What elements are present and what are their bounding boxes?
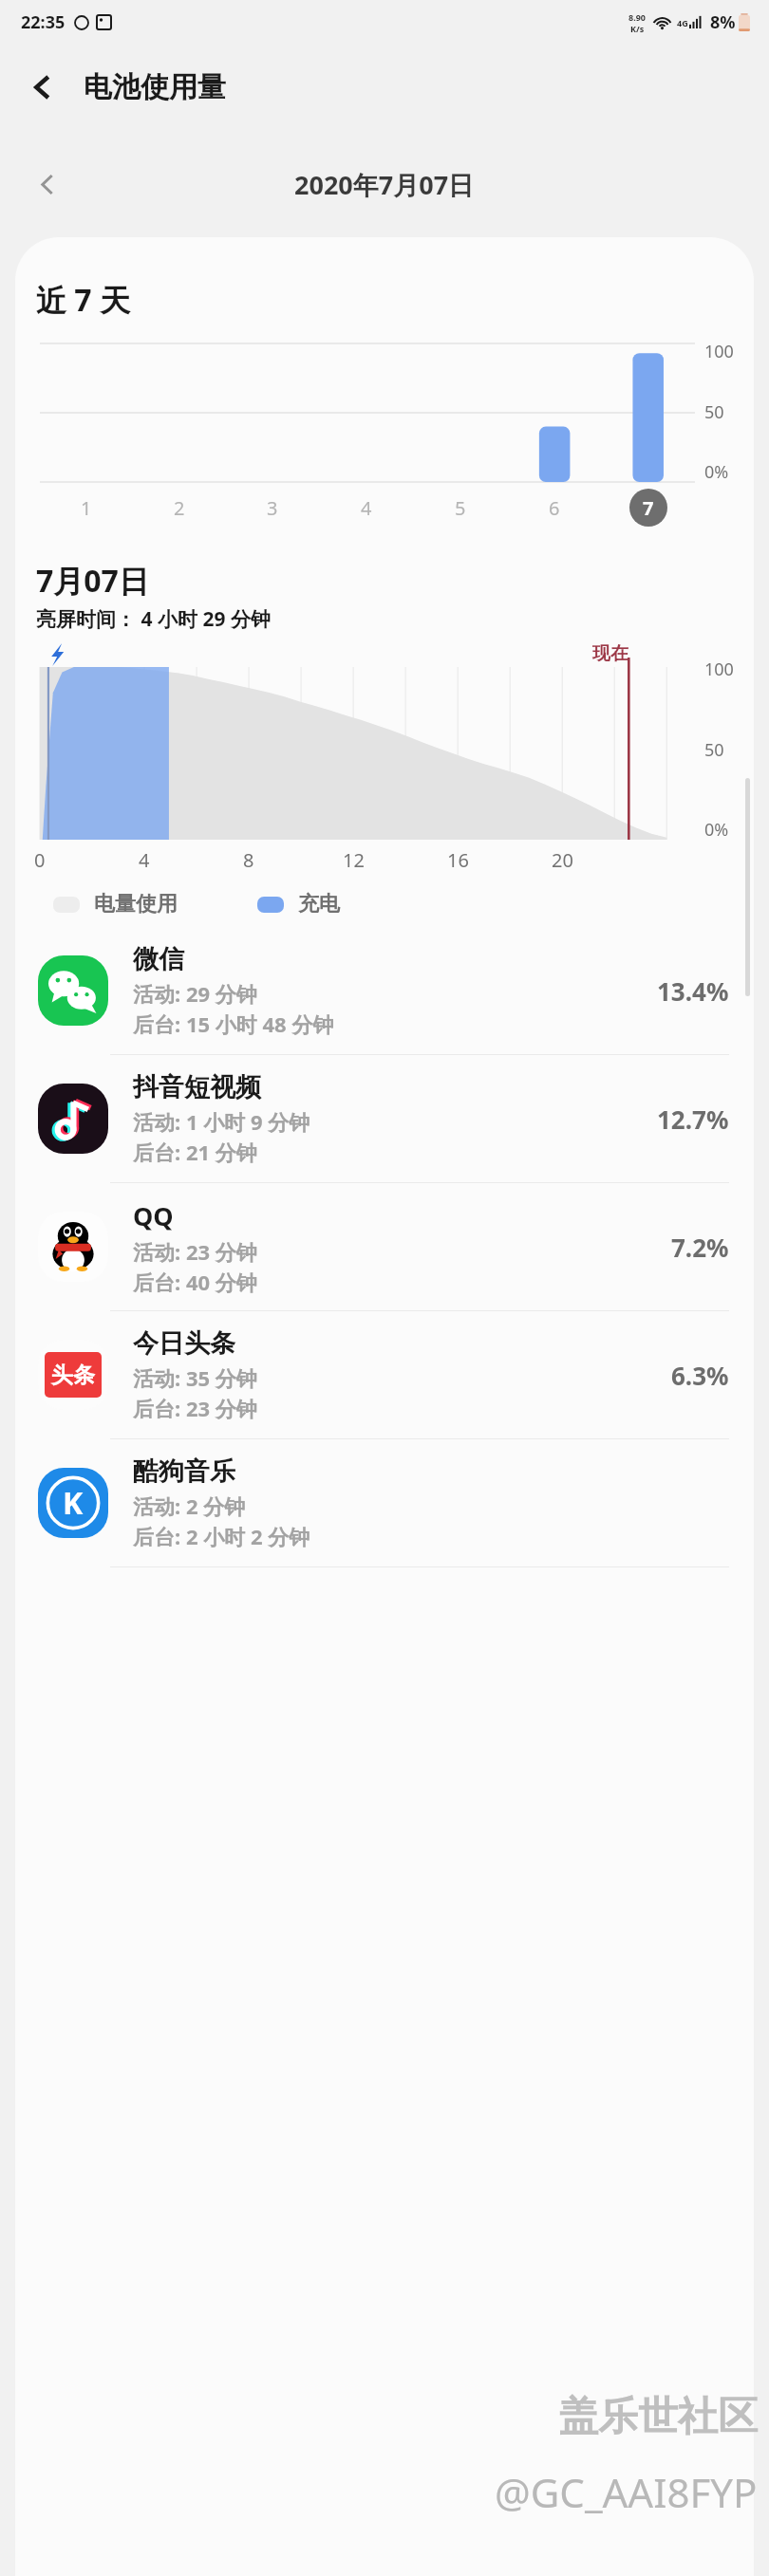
staticText: 8%	[710, 10, 736, 34]
staticText: 7	[643, 495, 654, 521]
staticText: 酷狗音乐	[133, 1455, 235, 1488]
staticText: 抖音短视频	[133, 1071, 261, 1103]
staticText: 0	[34, 847, 46, 873]
staticText: 活动: 35 分钟	[133, 1363, 257, 1392]
staticText: 13.4%	[657, 974, 729, 1008]
button[interactable]: QQ	[15, 1183, 754, 1310]
staticText: 后台: 21 分钟	[133, 1138, 257, 1166]
staticText: 7.2%	[671, 1231, 729, 1264]
staticText: 12	[343, 847, 365, 873]
button[interactable]: 4	[319, 488, 413, 528]
staticText: @GC_AAI8FYP	[495, 2465, 758, 2519]
staticText: 活动: 29 分钟	[133, 979, 257, 1008]
staticText: QQ	[133, 1198, 174, 1233]
button[interactable]: 1	[40, 488, 133, 528]
staticText: 后台: 15 小时 48 分钟	[133, 1010, 334, 1038]
button[interactable]: 3	[226, 488, 319, 528]
button[interactable]: 5	[413, 488, 507, 528]
staticText: 4	[361, 495, 372, 521]
staticText: 4	[139, 847, 150, 873]
staticText: 50	[704, 400, 724, 424]
staticText: 2020年7月07日	[294, 167, 475, 202]
button[interactable]: 2	[133, 488, 226, 528]
staticText: 充电	[298, 891, 340, 917]
staticText: 7月07日	[36, 560, 149, 602]
staticText: 电池使用量	[84, 69, 226, 105]
button[interactable]: Back	[15, 60, 70, 115]
staticText: 6	[549, 495, 560, 521]
staticText: 微信	[133, 943, 184, 975]
staticText: K/s	[630, 23, 645, 34]
staticText: 头条	[51, 1362, 95, 1389]
staticText: 100	[704, 340, 734, 363]
staticText: 今日头条	[133, 1327, 235, 1360]
staticText: 0%	[704, 460, 729, 484]
button[interactable]: 微信	[15, 927, 754, 1054]
staticText: 100	[704, 658, 734, 681]
staticText: 后台: 40 分钟	[133, 1268, 257, 1296]
staticText: K	[63, 1482, 84, 1524]
staticText: 亮屏时间： 4 小时 29 分钟	[36, 605, 271, 633]
button[interactable]: 头条	[15, 1311, 754, 1438]
staticText: 近 7 天	[36, 279, 130, 321]
staticText: 电量使用	[94, 891, 178, 917]
staticText: 1	[81, 495, 92, 521]
staticText: 5	[455, 495, 466, 521]
staticText: 8.90	[628, 11, 646, 23]
staticText: 盖乐世社区	[558, 2392, 758, 2442]
staticText: 16	[447, 847, 469, 873]
staticText: 4G	[677, 17, 688, 28]
staticText: 50	[704, 738, 724, 762]
staticText: 活动: 23 分钟	[133, 1237, 257, 1266]
staticText: 2	[174, 495, 185, 521]
staticText: 6.3%	[671, 1359, 729, 1392]
staticText: 后台: 23 分钟	[133, 1394, 257, 1422]
staticText: 活动: 1 小时 9 分钟	[133, 1107, 310, 1136]
button[interactable]: 7	[601, 488, 695, 528]
staticText: 22:35	[21, 10, 66, 34]
staticText: 活动: 2 分钟	[133, 1492, 246, 1520]
staticText: 后台: 2 小时 2 分钟	[133, 1522, 310, 1550]
button[interactable]: Previous day	[23, 159, 72, 209]
button[interactable]: K	[15, 1439, 754, 1566]
button[interactable]: 6	[507, 488, 601, 528]
staticText: 8	[243, 847, 254, 873]
staticText: 现在	[592, 642, 628, 665]
staticText: 12.7%	[657, 1103, 729, 1136]
button[interactable]: 抖音短视频	[15, 1055, 754, 1182]
staticText: 0%	[704, 818, 729, 842]
staticText: 3	[267, 495, 278, 521]
staticText: 20	[552, 847, 573, 873]
